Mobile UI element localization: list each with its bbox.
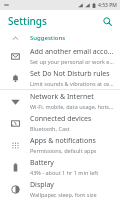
button[interactable]: Battery xyxy=(0,156,120,178)
staticText: Connected devices xyxy=(30,114,92,124)
button[interactable]: Display xyxy=(0,178,120,200)
staticText: Permissions, default apps xyxy=(30,147,97,154)
button[interactable]: Network & Internet xyxy=(0,90,120,112)
button[interactable]: Add another email account xyxy=(0,45,120,67)
staticText: Add another email account xyxy=(30,47,114,57)
staticText: 4:53 PM xyxy=(98,2,117,9)
staticText: Bluetooth, Cast xyxy=(30,125,70,132)
staticText: Wallpaper, sleep, font size xyxy=(30,191,97,198)
button[interactable]: Suggestions xyxy=(0,31,120,45)
button[interactable]: Apps & notifications xyxy=(0,134,120,156)
button[interactable]: Set Do Not Disturb rules xyxy=(0,67,120,89)
staticText: Set Do Not Disturb rules xyxy=(30,69,110,79)
staticText: Network & Internet xyxy=(30,92,94,102)
staticText: Battery xyxy=(30,158,54,168)
staticText: Suggestions xyxy=(30,34,66,42)
staticText: Set up your personal or work email xyxy=(30,58,114,65)
staticText: 43% - about 1 hr 1 min left xyxy=(30,169,99,176)
staticText: Limit sounds & vibrations at certain tim… xyxy=(30,80,114,87)
staticText: Apps & notifications xyxy=(30,136,96,146)
button[interactable]: Search settings xyxy=(99,13,115,29)
button[interactable]: Connected devices xyxy=(0,112,120,134)
staticText: Display xyxy=(30,180,54,190)
staticText: Settings xyxy=(8,14,47,28)
staticText: Wi-Fi, mobile, data usage, hotspot xyxy=(30,103,114,110)
